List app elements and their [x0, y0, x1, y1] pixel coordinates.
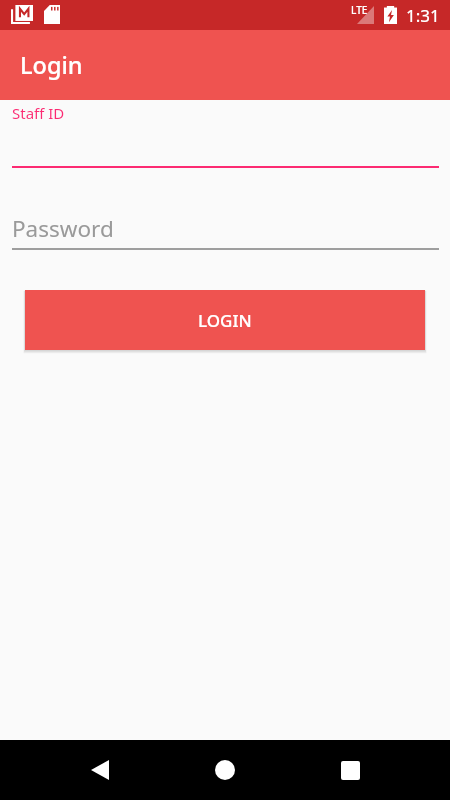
- button[interactable]: Staff ID: [12, 100, 439, 168]
- staticText: LOGIN: [198, 309, 252, 332]
- staticText: Password: [12, 213, 114, 244]
- button[interactable]: Home: [200, 745, 250, 795]
- button[interactable]: LOGIN: [25, 290, 425, 350]
- staticText: LTE: [351, 3, 368, 17]
- staticText: Login: [20, 49, 83, 81]
- button[interactable]: Recent apps: [325, 745, 375, 795]
- staticText: Staff ID: [12, 103, 65, 123]
- button[interactable]: Back: [75, 745, 125, 795]
- staticText: 1:31: [406, 4, 440, 27]
- button[interactable]: Password: [12, 204, 439, 250]
